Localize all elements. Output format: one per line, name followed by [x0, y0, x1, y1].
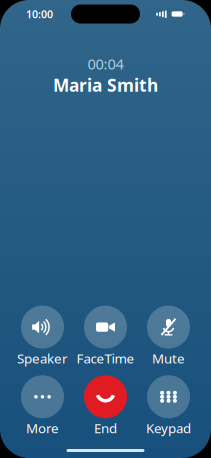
staticText: Maria Smith [53, 73, 158, 96]
staticText: More [26, 419, 59, 437]
staticText: 00:04 [87, 54, 123, 73]
staticText: Speaker [17, 350, 68, 367]
button[interactable]: FaceTime [74, 306, 137, 367]
button[interactable]: Speaker [11, 306, 74, 367]
button[interactable]: Mute [137, 306, 200, 367]
staticText: Keypad [146, 419, 191, 437]
staticText: 10:00 [26, 7, 53, 21]
staticText: FaceTime [76, 350, 134, 367]
button[interactable]: End [74, 375, 137, 437]
button[interactable]: Keypad [137, 375, 200, 437]
staticText: Mute [152, 350, 185, 367]
staticText: End [94, 419, 117, 437]
button[interactable]: More [11, 375, 74, 437]
